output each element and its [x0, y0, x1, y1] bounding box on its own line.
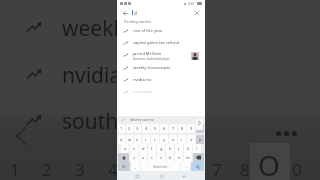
button[interactable]: 7	[169, 124, 177, 133]
staticText: k	[187, 146, 190, 151]
button[interactable]: Clear	[193, 9, 201, 17]
button[interactable]: h	[166, 144, 174, 153]
staticText: !#1	[122, 165, 126, 169]
button[interactable]: 4	[142, 124, 150, 133]
staticText: weekly h	[62, 14, 148, 43]
staticText: O	[258, 146, 280, 180]
staticText: 4	[108, 158, 118, 180]
staticText: 8	[240, 158, 250, 180]
staticText: 6	[163, 126, 166, 131]
button[interactable]: n	[175, 153, 183, 162]
button[interactable]: jarred McClain	[117, 49, 205, 62]
button[interactable]: k	[184, 144, 192, 153]
staticText: d	[134, 10, 137, 16]
staticText: 1	[120, 126, 123, 131]
staticText: 9	[190, 126, 193, 131]
button[interactable]: s	[130, 144, 138, 153]
staticText: y	[163, 137, 166, 142]
button[interactable]: a	[121, 144, 129, 153]
staticText: 1	[10, 158, 20, 180]
button[interactable]: Shift	[118, 153, 129, 162]
staticText: 7	[172, 126, 175, 131]
staticText: u	[172, 137, 175, 142]
button[interactable]: o	[187, 135, 195, 144]
button[interactable]: 9	[187, 124, 195, 133]
button[interactable]: Back	[121, 9, 129, 17]
staticText: 9:41	[188, 2, 195, 6]
button[interactable]: w	[126, 135, 133, 144]
button[interactable]: m	[184, 153, 192, 162]
staticText: rise of the year	[133, 28, 163, 34]
button[interactable]: Back	[181, 173, 188, 180]
button[interactable]: 1	[118, 124, 125, 133]
staticText: f	[151, 146, 153, 151]
button[interactable]: u	[169, 135, 177, 144]
button[interactable]: t	[151, 135, 159, 144]
button[interactable]: q	[118, 135, 125, 144]
button[interactable]: capital gains tax refund	[117, 37, 205, 49]
button[interactable]: 0	[196, 124, 204, 133]
staticText: b	[169, 155, 172, 160]
button[interactable]: v	[157, 153, 165, 162]
staticText: yesterday	[133, 89, 153, 95]
staticText: nvidia rt	[62, 61, 143, 90]
button[interactable]: yesterday	[117, 86, 205, 98]
staticText: .	[185, 164, 187, 169]
button[interactable]: f	[148, 144, 156, 153]
staticText: w	[128, 137, 132, 142]
staticText: p	[199, 137, 202, 142]
button[interactable]: p	[196, 135, 204, 144]
staticText: c	[151, 155, 153, 160]
staticText: g	[160, 146, 163, 151]
button[interactable]: l	[193, 144, 201, 153]
staticText: v	[160, 155, 163, 160]
button[interactable]: Space	[141, 162, 180, 171]
button[interactable]: g	[157, 144, 165, 153]
button[interactable]: 2	[126, 124, 133, 133]
button[interactable]: b	[166, 153, 174, 162]
staticText: delivery near me	[130, 118, 154, 122]
staticText: capital gains tax refund	[133, 40, 180, 46]
button[interactable]: d	[139, 144, 147, 153]
button[interactable]: z	[130, 153, 138, 162]
staticText: American basketball player	[133, 57, 170, 61]
button[interactable]: rise of the year	[117, 25, 205, 37]
staticText: s	[133, 146, 135, 151]
button[interactable]: 8	[178, 124, 186, 133]
button[interactable]: r	[142, 135, 150, 144]
button[interactable]: 6	[160, 124, 168, 133]
staticText: i	[181, 137, 183, 142]
staticText: 3	[75, 158, 85, 180]
staticText: jarred McClain	[133, 51, 162, 57]
button[interactable]: nvidia rtx	[117, 74, 205, 86]
staticText: d	[142, 146, 145, 151]
staticText: Nederlands	[153, 165, 168, 169]
staticText: ,	[135, 164, 137, 169]
staticText: q	[120, 137, 123, 142]
button[interactable]: i	[178, 135, 186, 144]
button[interactable]: Recents	[134, 173, 141, 180]
button[interactable]: y	[160, 135, 168, 144]
staticText: t	[154, 137, 156, 142]
button[interactable]: 5	[151, 124, 159, 133]
staticText: 3	[136, 126, 139, 131]
button[interactable]: j	[175, 144, 183, 153]
staticText: 0	[199, 126, 202, 131]
button[interactable]: c	[148, 153, 156, 162]
button[interactable]: Search	[191, 162, 204, 171]
button[interactable]: weekly horoscopes	[117, 62, 205, 74]
button[interactable]: x	[139, 153, 147, 162]
button[interactable]: e	[134, 135, 141, 144]
button[interactable]: Backspace	[193, 153, 204, 162]
button[interactable]: Home	[158, 173, 165, 180]
staticText: m	[186, 155, 190, 160]
staticText: o	[190, 137, 193, 142]
button[interactable]: .	[181, 162, 190, 171]
staticText: 4	[145, 126, 148, 131]
button[interactable]: !#1	[118, 162, 130, 171]
staticText: n	[178, 155, 181, 160]
staticText: 0	[198, 120, 201, 126]
button[interactable]: 3	[134, 124, 141, 133]
button[interactable]: ,	[131, 162, 140, 171]
staticText: j	[178, 146, 180, 151]
